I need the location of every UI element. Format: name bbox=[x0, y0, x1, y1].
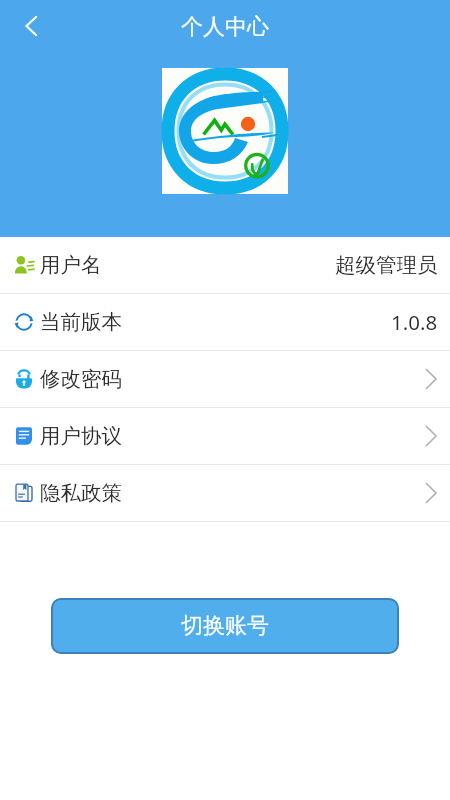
staticText: 个人中心 bbox=[181, 13, 269, 41]
button[interactable]: 修改密码 bbox=[0, 351, 450, 408]
button[interactable]: 隐私政策 bbox=[0, 465, 450, 522]
button[interactable]: 用户名 bbox=[0, 237, 450, 294]
staticText: 修改密码 bbox=[40, 366, 122, 392]
staticText: 切换账号 bbox=[181, 612, 269, 640]
button[interactable]: 切换账号 bbox=[51, 598, 399, 654]
button[interactable]: Back bbox=[11, 6, 51, 46]
staticText: 当前版本 bbox=[40, 309, 122, 335]
staticText: 超级管理员 bbox=[335, 252, 438, 278]
staticText: 隐私政策 bbox=[40, 480, 122, 506]
button[interactable]: 用户协议 bbox=[0, 408, 450, 465]
staticText: 用户协议 bbox=[40, 423, 122, 449]
staticText: 用户名 bbox=[40, 252, 102, 278]
staticText: 1.0.8 bbox=[391, 308, 438, 336]
button[interactable]: 当前版本 bbox=[0, 294, 450, 351]
